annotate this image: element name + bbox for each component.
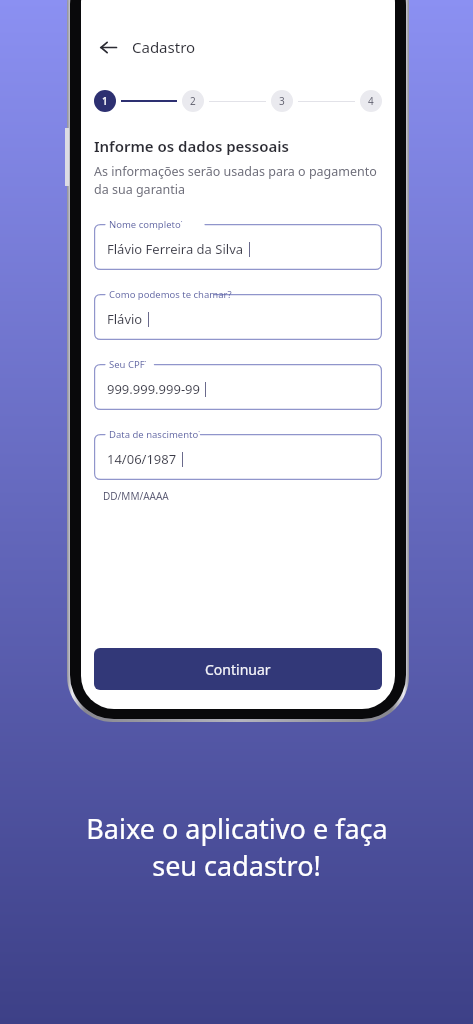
staticText: Flávio Ferreira da Silva bbox=[107, 240, 244, 258]
button[interactable]: 2 bbox=[182, 90, 204, 112]
staticText: seu cadastro! bbox=[152, 847, 321, 884]
staticText: Continuar bbox=[205, 660, 271, 679]
staticText: Como podemos te chamar? bbox=[109, 288, 232, 301]
staticText: Seu CPF˙ bbox=[109, 358, 147, 371]
staticText: As informações serão usadas para o pagam… bbox=[94, 163, 382, 198]
button[interactable]: 1 bbox=[94, 90, 116, 112]
staticText: 2 bbox=[190, 94, 196, 108]
staticText: Flávio bbox=[107, 310, 143, 328]
staticText: Data de nascimento˙ bbox=[109, 428, 200, 441]
button[interactable]: 3 bbox=[271, 90, 293, 112]
staticText: 3 bbox=[279, 94, 285, 108]
staticText: 4 bbox=[368, 94, 374, 108]
staticText: Cadastro bbox=[132, 37, 196, 57]
button[interactable]: Voltar bbox=[95, 34, 121, 60]
staticText: Informe os dados pessoais bbox=[94, 136, 289, 156]
staticText: Nome completo˙ bbox=[109, 218, 183, 231]
staticText: 14/06/1987 bbox=[107, 450, 177, 468]
staticText: DD/MM/AAAA bbox=[103, 489, 169, 503]
staticText: 1 bbox=[102, 94, 108, 108]
button[interactable]: Continuar bbox=[94, 648, 382, 690]
button[interactable]: 4 bbox=[360, 90, 382, 112]
staticText: Baixe o aplicativo e faça bbox=[86, 810, 388, 847]
staticText: 999.999.999-99 bbox=[107, 380, 200, 398]
